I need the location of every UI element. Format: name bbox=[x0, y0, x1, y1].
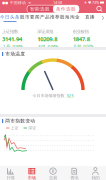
staticText: 市场 bbox=[28, 175, 36, 180]
staticText: ●● 中国移动 ᯤ bbox=[2, 0, 31, 5]
button[interactable]: 今日头条 bbox=[0, 13, 20, 23]
staticText: 上证 bbox=[11, 125, 19, 130]
button[interactable]: 市场 bbox=[21, 166, 42, 180]
button[interactable]: 我的 bbox=[85, 166, 106, 180]
button[interactable]: 条件选股 bbox=[53, 5, 79, 13]
staticText: -0.04% bbox=[11, 43, 22, 49]
staticText: 深证成指 bbox=[37, 29, 53, 34]
staticText: -1.35 bbox=[2, 43, 10, 49]
staticText: -4.01 bbox=[37, 43, 45, 49]
staticText: ✈ ♥ 73% bbox=[84, 0, 99, 5]
staticText: 直播 bbox=[85, 14, 95, 20]
button[interactable]: More tabs bbox=[100, 13, 106, 23]
staticText: 行情 bbox=[7, 175, 15, 180]
staticText: 产品推荐 bbox=[40, 14, 60, 20]
staticText: 深证 bbox=[28, 125, 36, 130]
staticText: -0.30 bbox=[73, 43, 81, 49]
staticText: 智能选股 bbox=[30, 6, 50, 12]
staticText: 3141.94 bbox=[2, 35, 22, 43]
button[interactable]: 产品推荐 bbox=[40, 13, 60, 23]
staticText: 今日头条 bbox=[0, 14, 20, 20]
staticText: 1847.8 bbox=[73, 35, 90, 43]
staticText: 14:58 bbox=[53, 0, 62, 5]
staticText: 10209.8 bbox=[37, 35, 57, 43]
button[interactable]: 行情 bbox=[0, 166, 21, 180]
staticText: -0.02% bbox=[82, 43, 93, 49]
button[interactable]: 深证成指 bbox=[35, 29, 71, 49]
staticText: 交易 bbox=[49, 175, 57, 180]
staticText: 两市指数变动 bbox=[5, 118, 35, 124]
button[interactable]: 上证指数 bbox=[0, 29, 35, 49]
button[interactable]: ¥ bbox=[42, 166, 64, 180]
button[interactable]: 股市要闻 bbox=[20, 13, 40, 23]
button[interactable]: 智能选股 bbox=[27, 5, 53, 13]
staticText: 股市要闻 bbox=[20, 14, 40, 20]
button[interactable]: 资讯 bbox=[64, 166, 85, 180]
staticText: 资讯 bbox=[70, 175, 78, 180]
staticText: 我的 bbox=[91, 175, 99, 180]
staticText: 32.5 bbox=[66, 93, 73, 98]
staticText: -0.04% bbox=[47, 43, 58, 49]
staticText: 创业板指 bbox=[73, 29, 89, 34]
button[interactable]: 直播 bbox=[80, 13, 100, 23]
staticText: 条件选股 bbox=[56, 6, 76, 12]
button[interactable]: 创业板指 bbox=[71, 29, 106, 49]
staticText: 股海淘金 bbox=[60, 14, 80, 20]
button[interactable]: Search bbox=[96, 5, 103, 12]
staticText: 上证指数 bbox=[2, 29, 18, 34]
staticText: ¥ bbox=[51, 168, 54, 174]
staticText: 市场温度 bbox=[5, 51, 25, 57]
button[interactable]: 股海淘金 bbox=[60, 13, 80, 23]
staticText: 今日市场情绪指数 bbox=[32, 93, 64, 98]
